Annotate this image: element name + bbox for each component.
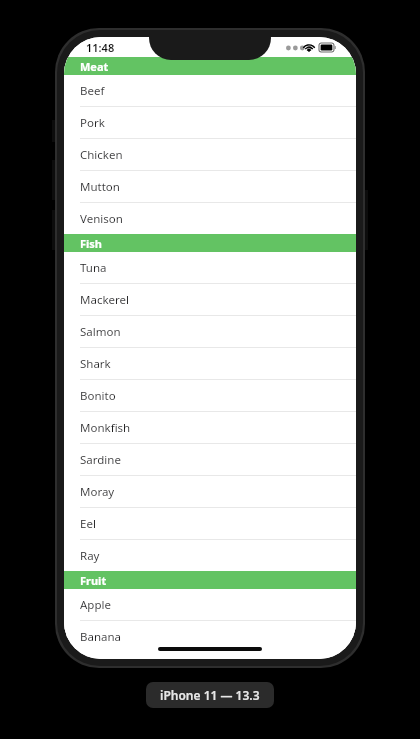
staticText: Tuna [80,260,107,276]
staticText: Mutton [80,179,120,195]
staticText: Shark [80,356,111,372]
staticText: Mackerel [80,292,130,308]
staticText: Apple [80,597,111,613]
staticText: Fish [80,236,102,251]
staticText: Ray [80,548,100,564]
staticText: Fruit [80,573,107,588]
button[interactable]: Sardine [64,444,356,476]
button[interactable]: Bonito [64,380,356,412]
button[interactable]: Fruit [64,571,356,589]
button[interactable]: Monkfish [64,412,356,444]
staticText: Sardine [80,452,121,468]
button[interactable]: Beef [64,75,356,107]
button[interactable]: Chicken [64,139,356,171]
staticText: Moray [80,484,115,500]
button[interactable]: Mackerel [64,284,356,316]
button[interactable]: Tuna [64,252,356,284]
button[interactable]: Eel [64,508,356,540]
button[interactable]: Pork [64,107,356,139]
button[interactable]: Ray [64,540,356,571]
staticText: Beef [80,83,105,99]
button[interactable]: iPhone 11 — 13.3 [146,682,274,708]
button[interactable]: Meat [64,57,356,75]
button[interactable]: Shark [64,348,356,380]
staticText: Salmon [80,324,121,340]
staticText: Meat [80,59,109,74]
staticText: Pork [80,115,105,131]
staticText: Eel [80,516,96,532]
button[interactable]: Fish [64,234,356,252]
staticText: 11:48 [86,40,115,55]
staticText: Bonito [80,388,116,404]
button[interactable]: Venison [64,203,356,234]
button[interactable]: Salmon [64,316,356,348]
button[interactable]: Apple [64,589,356,621]
button[interactable]: Banana [64,621,356,641]
staticText: Chicken [80,147,123,163]
staticText: Banana [80,629,122,641]
staticText: Monkfish [80,420,131,436]
button[interactable]: Moray [64,476,356,508]
button[interactable]: Mutton [64,171,356,203]
staticText: iPhone 11 — 13.3 [160,687,260,703]
staticText: Venison [80,211,123,227]
